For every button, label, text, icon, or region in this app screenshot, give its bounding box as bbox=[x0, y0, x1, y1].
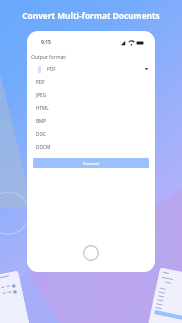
button[interactable]: JPEG bbox=[27, 88, 155, 101]
staticText: Convert Multi-format Documents bbox=[22, 10, 160, 21]
button[interactable]: BMP bbox=[27, 114, 155, 127]
staticText: JPEG bbox=[36, 92, 47, 98]
staticText: DOC bbox=[36, 131, 47, 137]
button[interactable]: DOCM bbox=[27, 140, 155, 153]
staticText: BMP bbox=[36, 118, 47, 124]
staticText: Output format: bbox=[31, 54, 67, 61]
button[interactable]: PDF bbox=[27, 63, 155, 75]
button[interactable]: DOC bbox=[27, 127, 155, 140]
staticText: PDF bbox=[47, 66, 56, 72]
staticText: PDF bbox=[36, 79, 45, 85]
staticText: 9:15 bbox=[41, 39, 51, 46]
staticText: Convert bbox=[83, 160, 100, 166]
staticText: DOCM bbox=[36, 144, 51, 150]
button[interactable]: Convert bbox=[33, 158, 149, 168]
button[interactable]: PDF bbox=[27, 75, 155, 88]
other: Home bbox=[83, 245, 99, 261]
staticText: HTML bbox=[36, 105, 49, 111]
button[interactable]: HTML bbox=[27, 101, 155, 114]
